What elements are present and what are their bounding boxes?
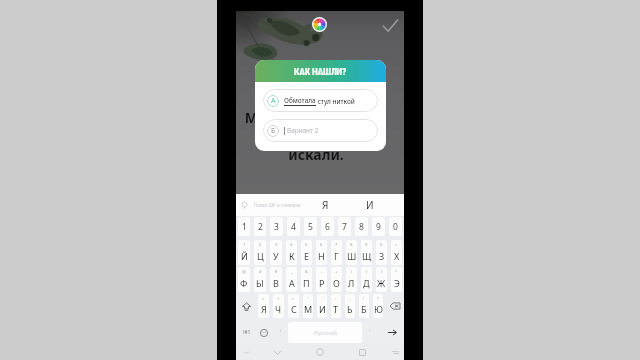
button[interactable]: 7 [331,240,342,265]
staticText: Ц [257,250,264,262]
staticText: 4 [291,221,296,233]
button[interactable]: ! [359,294,369,318]
button[interactable]: 9 [361,240,372,265]
staticText: А [289,277,295,289]
button[interactable]: 1 [238,217,250,236]
staticText: ) [366,269,368,275]
button[interactable]: + [331,267,342,292]
button[interactable]: ( [346,267,357,292]
button[interactable]: 6 [316,240,327,265]
staticText: ₽ [275,269,278,275]
button[interactable]: 8 [346,240,357,265]
button[interactable]: & [301,267,312,292]
button[interactable]: Recent apps [354,344,370,360]
staticText: Ж [377,277,386,289]
staticText: ; [349,296,351,302]
staticText: 9 [376,221,381,233]
staticText: 2 [259,242,262,248]
button[interactable]: Б [263,119,378,142]
staticText: @ [242,269,246,275]
button[interactable]: Backspace [385,294,404,318]
button[interactable]: 4 [286,240,297,265]
staticText: Мы нашли то, что и не знали что искали. [232,108,400,164]
staticText: 8 [350,242,353,248]
staticText: Я [322,198,329,212]
button[interactable]: _ [286,267,297,292]
staticText: И [319,303,326,315]
button[interactable]: 5 [304,217,317,236]
staticText: 2 [258,221,263,233]
button[interactable]: 5 [301,240,312,265]
button[interactable]: ) [361,267,372,292]
button[interactable]: Colour picker [312,17,327,32]
button[interactable]: = [258,294,269,318]
staticText: > [292,296,295,302]
button[interactable]: @ [238,267,250,292]
button[interactable]: 8 [355,217,368,236]
staticText: < [277,296,280,302]
staticText: 9 [365,242,368,248]
button[interactable]: Русский [288,322,362,343]
button[interactable]: !#1 [238,322,256,343]
button[interactable]: Enter [382,322,402,343]
button[interactable]: 0 [389,217,402,236]
staticText: Б [271,126,276,136]
button[interactable]: ; [345,294,355,318]
staticText: 1 [243,242,246,248]
button[interactable]: 4 [287,217,300,236]
button[interactable]: * [391,267,402,292]
staticText: И [366,198,374,212]
staticText: _ [291,269,293,275]
button[interactable]: Я [314,194,336,216]
button[interactable]: Home [312,344,328,360]
staticText: КАК НАШЛИ? [294,66,347,77]
staticText: 5 [305,242,308,248]
button[interactable]: Hide keyboard [269,344,285,360]
button[interactable]: 7 [338,217,351,236]
button[interactable]: 1 [238,240,250,265]
staticText: Э [394,277,400,289]
button[interactable]: Emoji [255,322,273,343]
staticText: Х [394,250,400,262]
staticText: Ф [240,277,248,289]
button[interactable]: > [288,294,299,318]
staticText: М [304,303,313,315]
button[interactable]: 3 [270,240,282,265]
button[interactable]: " [303,294,313,318]
staticText: 1 [242,221,247,233]
staticText: Й [241,250,248,262]
staticText: 4 [290,242,293,248]
staticText: ! [363,296,365,302]
staticText: Д [363,277,370,289]
staticText: Ч [275,303,282,315]
button[interactable]: + [391,240,402,265]
button[interactable]: < [273,294,284,318]
button[interactable]: Done [379,14,401,36]
button[interactable]: 6 [321,217,334,236]
button[interactable]: # [254,267,266,292]
staticText: Вариант 2 [287,126,319,135]
button[interactable]: 3 [270,217,283,236]
staticText: " [307,296,309,302]
button[interactable]: И [359,194,381,216]
button[interactable]: - [316,267,327,292]
staticText: Ы [256,277,264,289]
button[interactable]: / [376,267,387,292]
button[interactable]: ' [317,294,327,318]
button[interactable]: 2 [254,217,266,236]
staticText: = [262,296,265,302]
staticText: Ш [347,250,357,262]
button[interactable]: ₽ [270,267,282,292]
staticText: Т [333,303,339,315]
button[interactable]: 9 [372,217,385,236]
button[interactable]: 2 [254,240,266,265]
button[interactable]: 0 [376,240,387,265]
button[interactable]: А [263,89,378,112]
staticText: Р [319,277,325,289]
button[interactable]: ? [373,294,383,318]
button[interactable]: Shift [236,294,256,318]
staticText: 0 [393,221,398,233]
button[interactable]: : [331,294,341,318]
